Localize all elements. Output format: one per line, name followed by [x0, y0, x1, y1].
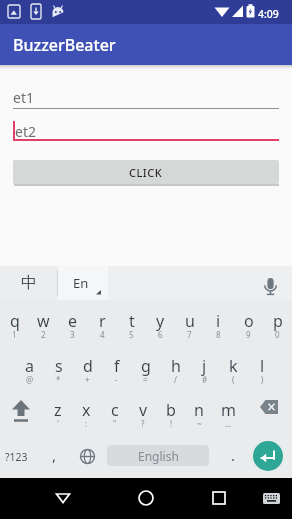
staticText: : — [85, 418, 88, 429]
button[interactable]: i — [204, 300, 233, 345]
staticText: 5 — [129, 329, 134, 340]
button[interactable]: a — [15, 345, 44, 390]
staticText: et2 — [15, 122, 36, 141]
staticText: j — [202, 355, 207, 377]
button[interactable]: h — [161, 345, 190, 390]
staticText: q — [10, 310, 20, 332]
staticText: ( — [232, 374, 235, 385]
staticText: BuzzerBeater — [13, 34, 116, 56]
staticText: * — [56, 374, 61, 385]
staticText: ? — [141, 418, 145, 429]
staticText: 中 — [21, 273, 37, 293]
staticText: , — [52, 445, 57, 465]
staticText: v — [139, 399, 148, 421]
staticText: l — [260, 355, 265, 377]
staticText: h — [171, 355, 181, 377]
button[interactable]: m — [214, 389, 242, 434]
button[interactable]: x — [72, 389, 100, 434]
button[interactable]: et2 — [13, 119, 279, 143]
staticText: et1 — [13, 88, 34, 107]
button[interactable]: English — [107, 445, 209, 466]
staticText: 1 — [12, 329, 17, 340]
staticText: . — [231, 445, 236, 465]
button[interactable]: ?123 — [0, 434, 33, 479]
staticText: k — [229, 355, 238, 377]
staticText: 8 — [216, 329, 221, 340]
button[interactable]: c — [101, 389, 129, 434]
staticText: English — [138, 448, 179, 464]
staticText: En — [73, 274, 89, 292]
staticText: ) — [261, 374, 264, 385]
button[interactable]: l — [248, 345, 277, 390]
staticText: 9 — [246, 329, 251, 340]
button[interactable] — [256, 483, 286, 513]
staticText: m — [221, 399, 236, 421]
button[interactable]: , — [40, 434, 69, 479]
button[interactable]: q — [0, 300, 29, 345]
button[interactable]: p — [263, 300, 292, 345]
button[interactable] — [252, 266, 292, 300]
button[interactable] — [248, 389, 292, 434]
button[interactable]: z — [44, 389, 72, 434]
button[interactable] — [48, 483, 78, 513]
button[interactable]: d — [73, 345, 102, 390]
staticText: " — [113, 418, 117, 429]
staticText: x — [82, 399, 91, 421]
staticText: 3 — [70, 329, 75, 340]
staticText: = — [143, 374, 148, 385]
staticText: ' — [57, 418, 59, 429]
staticText: o — [244, 310, 254, 332]
staticText: n — [194, 399, 204, 421]
staticText: ! — [170, 418, 173, 429]
staticText: a — [25, 355, 34, 377]
staticText: @ — [26, 374, 34, 385]
staticText: y — [156, 310, 165, 332]
staticText: d — [83, 355, 93, 377]
staticText: ~ — [197, 418, 202, 429]
staticText: - — [115, 374, 118, 385]
button[interactable]: n — [185, 389, 213, 434]
button[interactable]: . — [219, 434, 248, 479]
button[interactable] — [253, 441, 283, 471]
staticText: c — [111, 399, 119, 421]
staticText: w — [37, 310, 50, 332]
button[interactable]: En — [58, 266, 108, 300]
button[interactable]: s — [44, 345, 73, 390]
button[interactable]: f — [102, 345, 131, 390]
staticText: z — [54, 399, 62, 421]
staticText: t — [129, 310, 135, 332]
staticText: + — [85, 374, 90, 385]
staticText: g — [141, 355, 151, 377]
button[interactable] — [0, 389, 44, 434]
button[interactable]: y — [146, 300, 175, 345]
button[interactable]: k — [219, 345, 248, 390]
staticText: 7 — [187, 329, 192, 340]
staticText: CLICK — [129, 165, 163, 180]
staticText: / — [174, 374, 177, 385]
staticText: ?123 — [5, 450, 28, 464]
staticText: 0 — [275, 329, 280, 340]
button[interactable]: b — [157, 389, 185, 434]
button[interactable] — [204, 483, 234, 513]
button[interactable]: CLICK — [13, 160, 279, 184]
button[interactable]: e — [58, 300, 87, 345]
button[interactable]: r — [88, 300, 117, 345]
staticText: r — [99, 310, 106, 332]
button[interactable]: t — [117, 300, 146, 345]
staticText: 2 — [41, 329, 46, 340]
staticText: # — [202, 374, 208, 385]
button[interactable]: v — [129, 389, 157, 434]
staticText: … — [225, 418, 232, 429]
button[interactable]: g — [131, 345, 160, 390]
button[interactable]: o — [234, 300, 263, 345]
staticText: 4:09 — [258, 7, 279, 21]
button[interactable]: et1 — [13, 83, 279, 109]
button[interactable] — [131, 483, 161, 513]
staticText: e — [68, 310, 78, 332]
button[interactable]: j — [190, 345, 219, 390]
button[interactable] — [73, 434, 102, 479]
button[interactable]: w — [29, 300, 58, 345]
button[interactable]: u — [175, 300, 204, 345]
button[interactable]: 中 — [0, 266, 57, 300]
staticText: u — [185, 310, 195, 332]
